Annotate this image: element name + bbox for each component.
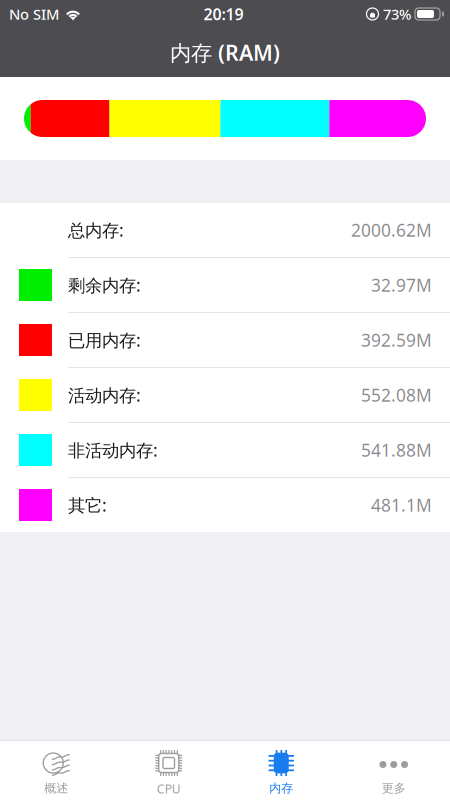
staticText: 剩余内存:: [68, 273, 141, 296]
button[interactable]: 总内存:: [0, 203, 450, 257]
button[interactable]: 剩余内存:: [0, 258, 450, 312]
staticText: 541.88M: [361, 438, 432, 461]
staticText: 2000.62M: [351, 218, 432, 241]
staticText: 392.59M: [361, 328, 432, 351]
staticText: 总内存:: [68, 218, 124, 241]
staticText: CPU: [157, 781, 181, 797]
staticText: 20:19: [203, 3, 243, 25]
staticText: 481.1M: [371, 493, 432, 516]
staticText: 内存 (RAM): [170, 38, 280, 67]
staticText: 其它:: [68, 493, 107, 516]
button[interactable]: 其它:: [0, 478, 450, 532]
staticText: 32.97M: [371, 273, 432, 296]
button[interactable]: 已用内存:: [0, 313, 450, 367]
staticText: 已用内存:: [68, 328, 141, 351]
button[interactable]: CPU: [112, 741, 225, 800]
button[interactable]: 内存: [225, 741, 337, 800]
button[interactable]: 概述: [0, 741, 112, 800]
staticText: 更多: [382, 781, 406, 796]
staticText: 552.08M: [361, 383, 432, 406]
staticText: 内存: [269, 781, 293, 796]
staticText: 活动内存:: [68, 383, 141, 406]
button[interactable]: 非活动内存:: [0, 423, 450, 477]
staticText: 73%: [383, 4, 411, 24]
staticText: 概述: [44, 781, 68, 796]
button[interactable]: 更多: [337, 741, 450, 800]
button[interactable]: 活动内存:: [0, 368, 450, 422]
staticText: No SIM: [9, 4, 59, 24]
staticText: 非活动内存:: [68, 438, 158, 461]
